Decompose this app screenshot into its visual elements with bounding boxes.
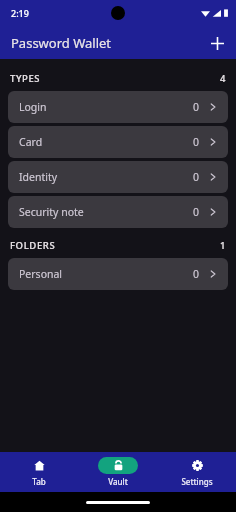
staticText: 0	[193, 100, 200, 114]
staticText: 4	[220, 72, 226, 85]
staticText: Security note	[19, 205, 193, 219]
button[interactable]: Settings	[157, 452, 236, 492]
staticText: Tab	[32, 476, 46, 487]
staticText: 1	[220, 239, 226, 252]
button[interactable]: Personal	[8, 258, 228, 290]
staticText: Card	[19, 135, 193, 149]
staticText: 2:19	[11, 7, 29, 19]
staticText: Settings	[181, 476, 213, 487]
button[interactable]: Add item	[204, 30, 230, 56]
staticText: 0	[193, 205, 200, 219]
button[interactable]: Card	[8, 126, 228, 158]
staticText: Login	[19, 100, 193, 114]
staticText: TYPES	[10, 72, 41, 85]
staticText: FOLDERS	[10, 239, 56, 252]
button[interactable]: Tab	[0, 452, 78, 492]
button[interactable]: Security note	[8, 196, 228, 228]
button[interactable]: Login	[8, 91, 228, 123]
staticText: 0	[193, 135, 200, 149]
button[interactable]: Vault	[78, 452, 157, 492]
staticText: 0	[193, 267, 200, 281]
staticText: Vault	[108, 476, 128, 487]
button[interactable]: Identity	[8, 161, 228, 193]
staticText: 0	[193, 170, 200, 184]
staticText: Password Wallet	[11, 34, 112, 52]
staticText: Personal	[19, 267, 193, 281]
staticText: Identity	[19, 170, 193, 184]
